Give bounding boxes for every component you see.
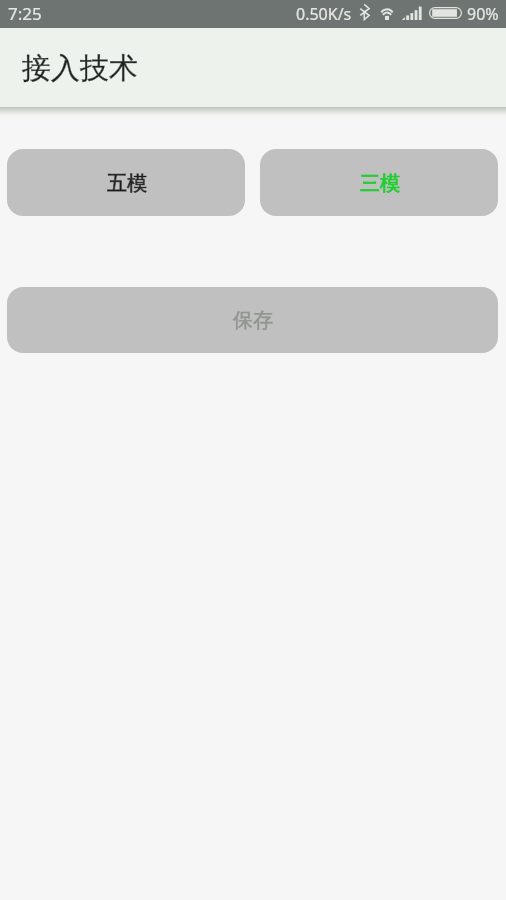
staticText: 7:25: [8, 2, 42, 25]
staticText: 五模: [107, 171, 147, 196]
staticText: 五模: [107, 171, 147, 196]
staticText: 接入技术: [22, 50, 138, 87]
staticText: 90%: [467, 3, 499, 25]
staticText: 三模: [360, 171, 400, 196]
staticText: 接入技术: [22, 50, 138, 87]
other: Wi-Fi connected: [379, 7, 395, 20]
button[interactable]: 三模: [260, 149, 498, 216]
other: Mobile signal full: [402, 7, 423, 20]
other: Bluetooth on: [360, 4, 370, 20]
button[interactable]: 五模: [7, 149, 245, 216]
staticText: 0.50K/s: [296, 3, 352, 25]
other: Battery 90 percent: [429, 7, 462, 19]
staticText: 三模: [360, 171, 400, 196]
button[interactable]: 保存: [7, 287, 498, 353]
staticText: 保存: [233, 308, 273, 333]
staticText: 保存: [233, 308, 273, 333]
